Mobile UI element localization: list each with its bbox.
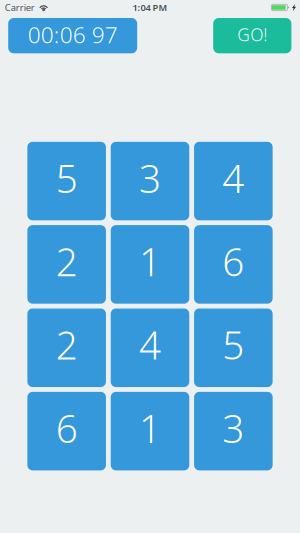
staticText: 4 <box>139 319 161 370</box>
staticText: 3 <box>139 152 161 203</box>
button[interactable]: 6 <box>27 392 106 470</box>
button[interactable]: 4 <box>111 308 189 387</box>
staticText: 1 <box>139 402 161 454</box>
staticText: 6 <box>56 402 78 454</box>
button[interactable]: 3 <box>111 142 189 220</box>
button[interactable]: 6 <box>194 225 273 304</box>
button[interactable]: 2 <box>27 225 106 304</box>
button[interactable]: 2 <box>27 308 106 387</box>
staticText: 1:04 PM <box>132 1 167 14</box>
button[interactable]: GO! <box>213 18 291 53</box>
button[interactable]: 1 <box>111 225 189 304</box>
button[interactable]: 4 <box>194 142 273 220</box>
staticText: Carrier <box>5 1 35 14</box>
staticText: 00:06 97 <box>28 19 118 49</box>
button[interactable]: 3 <box>194 392 273 470</box>
staticText: GO! <box>237 23 267 46</box>
staticText: 2 <box>56 319 78 370</box>
staticText: 5 <box>56 152 78 203</box>
button[interactable]: 1 <box>111 392 189 470</box>
staticText: 4 <box>222 152 244 203</box>
staticText: 5 <box>222 319 244 370</box>
staticText: 1 <box>139 236 161 287</box>
button[interactable]: 00:06 97 <box>8 18 137 53</box>
staticText: 3 <box>222 402 244 454</box>
button[interactable]: 5 <box>194 308 273 387</box>
staticText: 2 <box>56 236 78 287</box>
staticText: 6 <box>222 236 244 287</box>
button[interactable]: 5 <box>27 142 106 220</box>
